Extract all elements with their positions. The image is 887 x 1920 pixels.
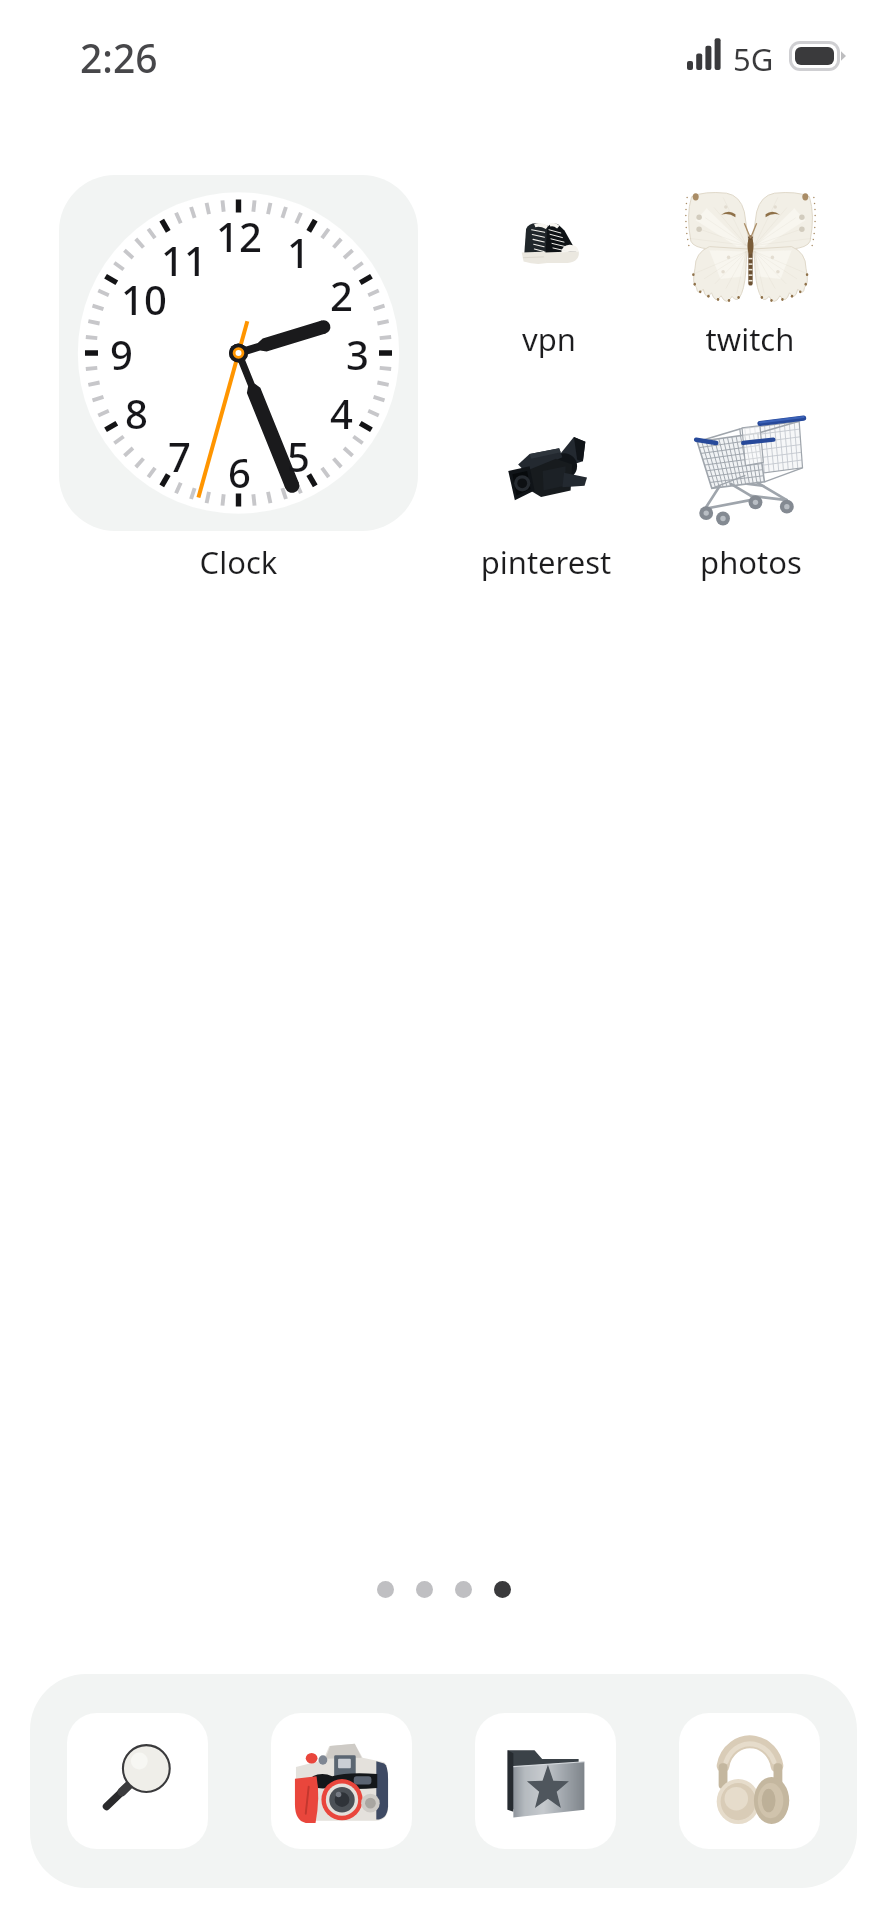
staticText: photos	[651, 541, 851, 583]
button[interactable]: Page 1	[377, 1581, 394, 1598]
staticText: Clock	[59, 541, 418, 583]
button[interactable]: Music	[679, 1713, 820, 1849]
staticText: 3	[346, 327, 369, 381]
button[interactable]: vpn	[449, 162, 649, 358]
staticText: 10	[121, 272, 167, 326]
button[interactable]: Clock widget	[59, 175, 418, 581]
button[interactable]: pinterest	[446, 383, 646, 581]
button[interactable]: photos	[651, 387, 851, 581]
staticText: 11	[161, 233, 207, 287]
button[interactable]: Camera	[271, 1713, 412, 1849]
staticText: 5	[287, 429, 310, 483]
staticText: 2	[330, 268, 353, 322]
staticText: vpn	[449, 318, 649, 360]
button[interactable]: twitch	[650, 171, 850, 358]
button[interactable]: Page 2	[416, 1581, 433, 1598]
staticText: 2:26	[80, 31, 158, 84]
button[interactable]: Search	[67, 1713, 208, 1849]
staticText: 5G	[733, 38, 774, 80]
staticText: 4	[330, 386, 353, 440]
staticText: 8	[125, 386, 148, 440]
staticText: 7	[168, 429, 191, 483]
button[interactable]: Page 4	[494, 1581, 511, 1598]
staticText: 6	[228, 445, 251, 499]
button[interactable]: Page 3	[455, 1581, 472, 1598]
staticText: pinterest	[446, 541, 646, 583]
staticText: 9	[110, 327, 133, 381]
staticText: twitch	[650, 318, 850, 360]
button[interactable]: Files	[475, 1713, 616, 1849]
staticText: 12	[216, 209, 262, 263]
staticText: 1	[287, 225, 310, 279]
